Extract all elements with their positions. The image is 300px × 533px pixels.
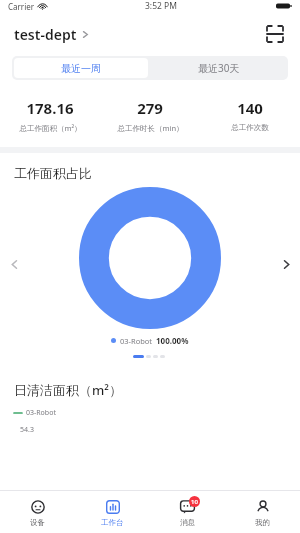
- button[interactable]: 工作台: [75, 491, 150, 533]
- staticText: 178.16: [26, 98, 74, 118]
- staticText: 设备: [30, 518, 45, 527]
- button[interactable]: test-dept: [14, 25, 90, 44]
- staticText: Carrier: [8, 1, 35, 12]
- staticText: 工作台: [101, 518, 124, 527]
- staticText: 总工作次数: [231, 123, 269, 132]
- button[interactable]: 10: [150, 491, 225, 533]
- button[interactable]: Previous: [0, 250, 28, 278]
- button[interactable]: Next: [272, 250, 300, 278]
- staticText: 279: [137, 98, 163, 118]
- staticText: 03-Robot: [120, 336, 153, 346]
- staticText: 3:52 PM: [145, 0, 177, 12]
- staticText: 总工作面积（m²）: [19, 123, 82, 133]
- staticText: 日清洁面积（m²）: [14, 381, 122, 399]
- staticText: 最近30天: [198, 61, 240, 75]
- button[interactable]: 最近一周: [14, 58, 148, 78]
- staticText: 10: [191, 498, 198, 506]
- staticText: 总工作时长（min）: [117, 123, 184, 133]
- staticText: 100.00%: [156, 335, 189, 346]
- staticText: test-dept: [14, 25, 77, 44]
- staticText: 消息: [180, 518, 195, 527]
- staticText: 我的: [255, 518, 270, 527]
- button[interactable]: 设备: [0, 491, 75, 533]
- staticText: 54.3: [20, 425, 34, 435]
- staticText: 140: [237, 98, 263, 118]
- button[interactable]: 我的: [225, 491, 300, 533]
- staticText: 工作面积占比: [14, 165, 92, 181]
- button[interactable]: Scan: [262, 21, 288, 47]
- button[interactable]: 最近30天: [150, 56, 288, 80]
- staticText: 最近一周: [61, 62, 101, 75]
- staticText: 03-Robot: [26, 408, 56, 418]
